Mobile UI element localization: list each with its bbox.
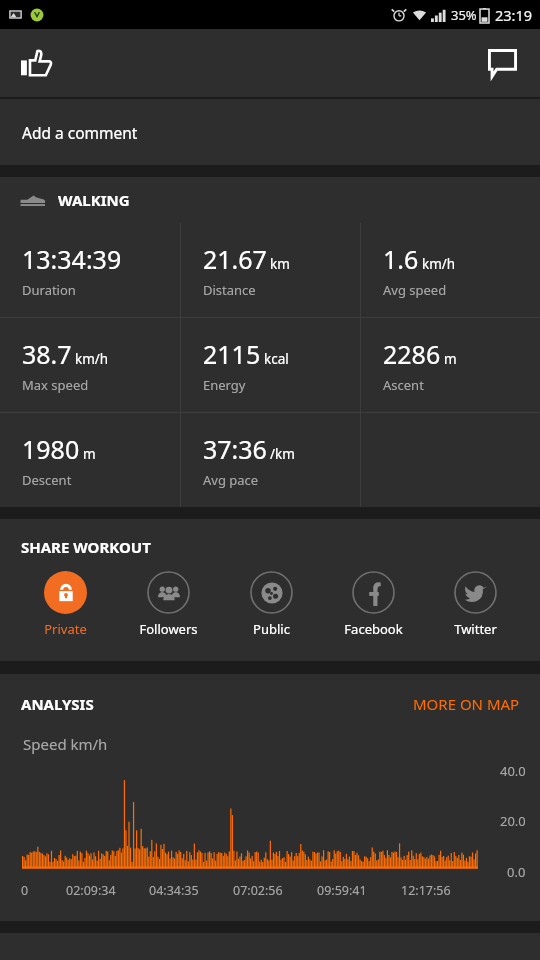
staticText: 1.6 (383, 242, 419, 276)
staticText: 1980 (22, 432, 80, 466)
button[interactable]: 21.67 (181, 223, 360, 317)
staticText: 35% (451, 6, 477, 24)
button[interactable]: MORE ON MAP (409, 690, 524, 718)
button[interactable]: Public (220, 569, 322, 640)
staticText: MORE ON MAP (413, 694, 520, 714)
staticText: Avg pace (203, 471, 259, 489)
staticText: Twitter (454, 620, 497, 638)
staticText: 2115 (203, 337, 261, 371)
button[interactable]: Private (14, 569, 117, 640)
button[interactable]: Followers (117, 569, 220, 640)
staticText: 07:02:56 (233, 882, 283, 899)
button[interactable]: 2115 (181, 318, 360, 412)
staticText: 09:59:41 (317, 882, 367, 899)
staticText: 40.0 (500, 762, 526, 776)
button[interactable]: 37:36 (181, 413, 360, 507)
staticText: Ascent (383, 376, 424, 394)
staticText: /km (270, 445, 295, 463)
staticText: 38.7 (22, 337, 72, 371)
staticText: 0 (21, 882, 29, 899)
button[interactable]: 38.7 (0, 318, 180, 412)
staticText: WALKING (58, 190, 130, 210)
staticText: 0.0 (507, 863, 526, 877)
staticText: Descent (22, 471, 72, 489)
staticText: 2286 (383, 337, 441, 371)
button[interactable]: 1980 (0, 413, 180, 507)
staticText: Distance (203, 281, 256, 299)
staticText: 23:19 (495, 5, 533, 25)
staticText: 12:17:56 (401, 882, 451, 899)
button[interactable]: 2286 (361, 318, 540, 412)
staticText: Add a comment (22, 122, 138, 143)
staticText: 13:34:39 (22, 242, 122, 276)
staticText: Avg speed (383, 281, 447, 299)
staticText: 20.0 (500, 812, 526, 826)
staticText: Public (253, 620, 290, 638)
staticText: 04:34:35 (149, 882, 199, 899)
button[interactable]: Facebook (322, 569, 424, 640)
staticText: Followers (139, 620, 198, 638)
staticText: m (444, 350, 457, 368)
staticText: Duration (22, 281, 76, 299)
staticText: Speed km/h (23, 734, 108, 754)
staticText: km (270, 255, 290, 273)
staticText: km/h (75, 350, 109, 368)
staticText: ANALYSIS (21, 694, 94, 714)
staticText: kcal (264, 350, 289, 368)
staticText: Private (44, 620, 87, 638)
staticText: SHARE WORKOUT (21, 537, 151, 557)
staticText: 02:09:34 (66, 882, 116, 899)
staticText: m (83, 445, 96, 463)
button[interactable]: Add a comment (0, 99, 540, 165)
button[interactable]: Like (8, 35, 64, 91)
staticText: Energy (203, 376, 246, 394)
staticText: 37:36 (203, 432, 267, 466)
staticText: Facebook (344, 620, 403, 638)
button[interactable]: 13:34:39 (0, 223, 180, 317)
staticText: km/h (422, 255, 456, 273)
button[interactable]: Twitter (424, 569, 526, 640)
staticText: Max speed (22, 376, 89, 394)
button[interactable]: 1.6 (361, 223, 540, 317)
staticText: 21.67 (203, 242, 267, 276)
button[interactable]: Comment (474, 35, 530, 91)
